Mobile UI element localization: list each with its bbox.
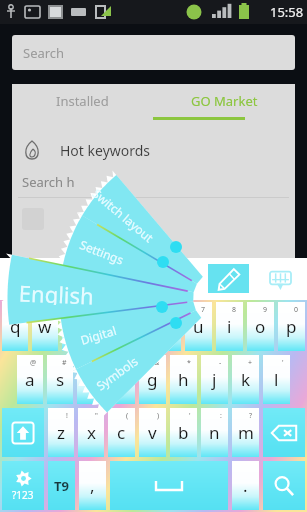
button[interactable]: T9: [48, 461, 75, 510]
staticText: ?123: [12, 488, 34, 502]
staticText: l: [274, 368, 279, 391]
staticText: !: [66, 411, 68, 421]
staticText: ': [282, 358, 284, 368]
staticText: s: [56, 368, 65, 391]
button[interactable]: 9: [247, 302, 274, 351]
staticText: Symbols: [93, 352, 141, 393]
button[interactable]: +: [232, 355, 259, 404]
button[interactable]: 2: [32, 302, 58, 351]
staticText: o: [255, 315, 266, 338]
button[interactable]: !: [48, 408, 74, 457]
staticText: Search h: [22, 173, 75, 191]
staticText: q: [10, 315, 21, 338]
button[interactable]: ': [170, 408, 197, 457]
staticText: (: [126, 411, 129, 421]
staticText: GO Market: [191, 92, 258, 110]
staticText: c: [117, 421, 126, 444]
button[interactable]: Handwriting: [208, 264, 249, 293]
staticText: e: [70, 315, 80, 338]
staticText: 15:58: [270, 3, 304, 21]
button[interactable]: ': [263, 355, 290, 404]
button[interactable]: (: [108, 408, 135, 457]
staticText: u: [193, 315, 204, 338]
button[interactable]: 4: [92, 302, 119, 351]
button[interactable]: Settings: [51, 222, 153, 282]
staticText: 8: [232, 305, 237, 315]
button[interactable]: Installed: [12, 84, 153, 117]
staticText: English: [18, 278, 94, 306]
staticText: v: [148, 421, 157, 444]
button[interactable]: :: [201, 408, 228, 457]
button[interactable]: &: [139, 355, 166, 404]
button[interactable]: -: [201, 355, 228, 404]
button[interactable]: Search: [263, 461, 305, 510]
staticText: z: [57, 421, 65, 444]
button[interactable]: Space: [110, 461, 228, 510]
staticText: English: [131, 267, 193, 291]
staticText: t: [133, 315, 140, 338]
staticText: Installed: [56, 92, 109, 110]
staticText: d: [85, 368, 96, 391]
button[interactable]: ": [78, 408, 104, 457]
button[interactable]: Hot keywords: [12, 131, 295, 169]
staticText: %: [123, 358, 129, 368]
staticText: @: [30, 358, 37, 368]
button[interactable]: 5: [123, 302, 150, 351]
button[interactable]: [0, 0, 307, 512]
button[interactable]: English: [122, 267, 202, 291]
staticText: a: [25, 368, 35, 391]
staticText: *: [187, 358, 191, 368]
staticText: g: [147, 368, 158, 391]
staticText: 5: [139, 305, 144, 315]
button[interactable]: @: [17, 355, 43, 404]
button[interactable]: %: [108, 355, 135, 404]
button[interactable]: .: [232, 461, 259, 510]
button[interactable]: ): [139, 408, 166, 457]
button[interactable]: Backspace: [263, 408, 305, 457]
button[interactable]: 0: [278, 302, 305, 351]
button[interactable]: ?: [232, 408, 259, 457]
button[interactable]: Search: [12, 35, 295, 70]
staticText: h: [178, 368, 189, 391]
staticText: :: [220, 411, 222, 421]
staticText: Settings: [78, 236, 126, 268]
button[interactable]: *: [170, 355, 197, 404]
staticText: b: [178, 421, 189, 444]
button[interactable]: Switch layout: [76, 173, 170, 257]
staticText: x: [87, 421, 96, 444]
staticText: Switch layout: [90, 185, 157, 246]
staticText: $: [93, 358, 98, 368]
button[interactable]: Shift: [2, 408, 44, 457]
button[interactable]: 6: [154, 302, 181, 351]
staticText: ,: [90, 474, 95, 497]
button[interactable]: $: [77, 355, 104, 404]
staticText: i: [227, 315, 232, 338]
staticText: 4: [108, 305, 113, 315]
staticText: ": [95, 411, 98, 421]
button[interactable]: #: [47, 355, 73, 404]
staticText: y: [163, 315, 172, 338]
button[interactable]: Symbols and settings: [2, 461, 44, 510]
staticText: 0: [294, 305, 299, 315]
button[interactable]: 8: [216, 302, 243, 351]
button[interactable]: Keyboard layout: [268, 268, 292, 292]
button[interactable]: English: [5, 277, 106, 307]
staticText: r: [102, 315, 110, 338]
staticText: -: [219, 358, 222, 368]
staticText: #: [62, 358, 67, 368]
button[interactable]: Digital: [46, 308, 150, 362]
staticText: n: [209, 421, 220, 444]
button[interactable]: 1: [2, 302, 28, 351]
staticText: Digital: [78, 322, 118, 348]
staticText: ?: [249, 411, 253, 421]
staticText: Hot keywords: [60, 141, 151, 160]
staticText: &: [154, 358, 160, 368]
button[interactable]: Symbols: [69, 333, 165, 413]
button[interactable]: ,: [79, 461, 106, 510]
button[interactable]: 7: [185, 302, 212, 351]
button[interactable]: 3: [62, 302, 88, 351]
button[interactable]: GO Market: [153, 84, 295, 117]
